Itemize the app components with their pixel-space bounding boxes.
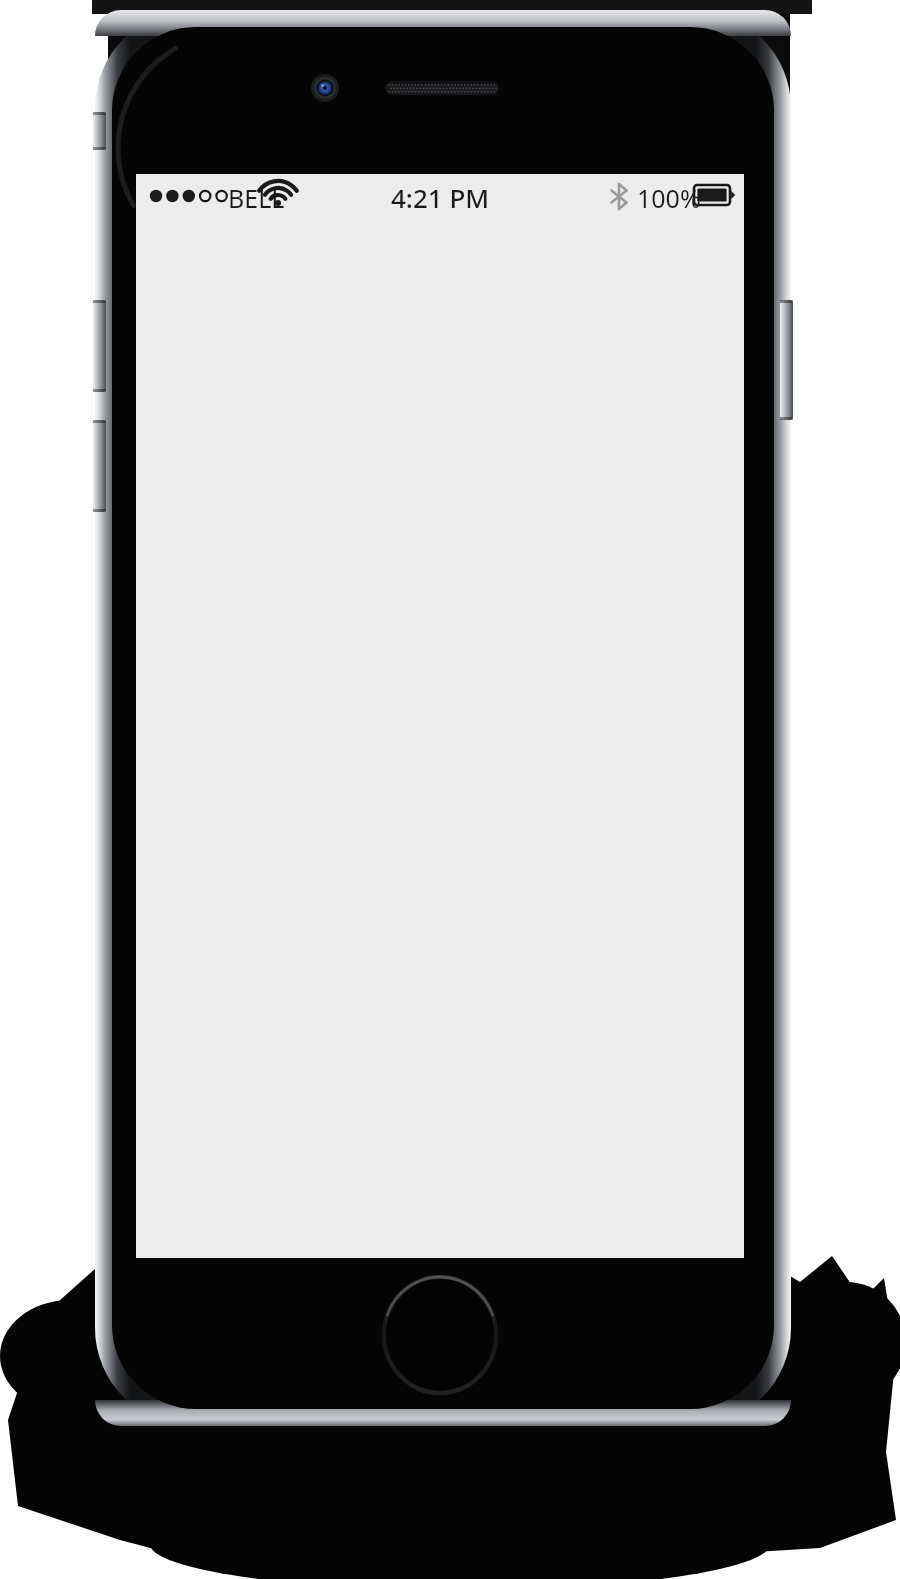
button[interactable]: Home bbox=[384, 1277, 496, 1393]
staticText: 4:21 PM bbox=[391, 180, 490, 214]
staticText: BELL bbox=[228, 181, 285, 215]
staticText: 100% bbox=[637, 181, 701, 215]
